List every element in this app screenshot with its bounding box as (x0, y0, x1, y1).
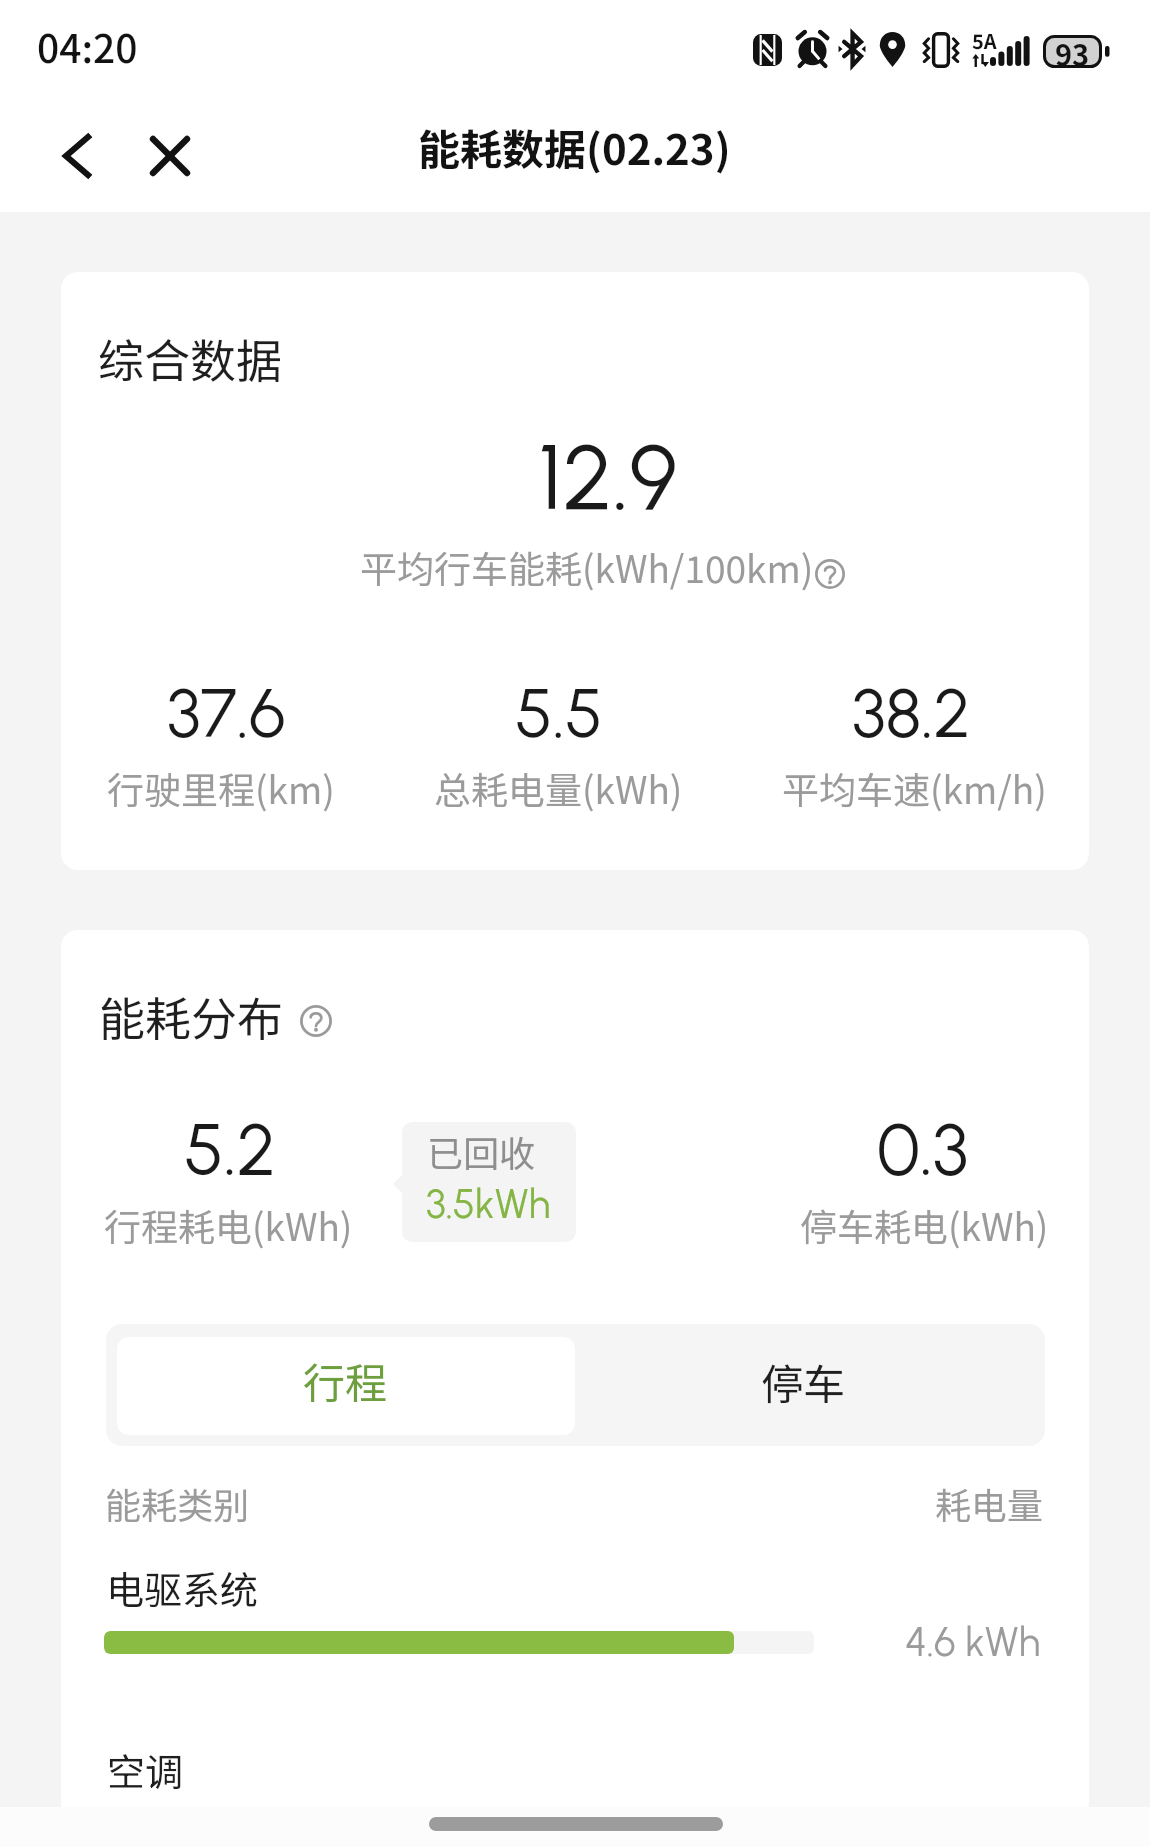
staticText: 3.5kWh (426, 1180, 551, 1228)
staticText: 平均车速(km/h) (782, 761, 1047, 815)
staticText: 已回收 (427, 1125, 536, 1177)
button[interactable]: More information (815, 559, 845, 589)
staticText: 停车耗电(kWh) (800, 1198, 1049, 1252)
button[interactable]: Close (138, 124, 201, 187)
staticText: 平均行车能耗(kWh/100km) (360, 540, 814, 594)
staticText: 37.6 (167, 672, 286, 754)
staticText: 4.6 kWh (905, 1618, 1041, 1666)
button[interactable]: More information (300, 1005, 332, 1037)
staticText: 总耗电量(kWh) (434, 761, 683, 815)
staticText: 能耗分布 (99, 983, 283, 1050)
staticText: 行程 (303, 1350, 388, 1411)
staticText: 04:20 (37, 18, 138, 74)
staticText: 能耗数据(02.23) (418, 116, 731, 177)
staticText: 行程耗电(kWh) (104, 1198, 353, 1252)
button[interactable]: Back (45, 124, 108, 187)
button[interactable]: 行程 (117, 1337, 575, 1435)
staticText: 5.5 (515, 672, 603, 754)
staticText: 12.9 (538, 422, 678, 532)
staticText: 行驶里程(km) (107, 761, 335, 815)
staticText: 耗电量 (935, 1477, 1044, 1529)
staticText: 电驱系统 (106, 1560, 259, 1615)
staticText: 能耗类别 (105, 1477, 250, 1529)
staticText: 5.2 (184, 1106, 277, 1192)
staticText: 综合数据 (98, 325, 282, 392)
staticText: 空调 (107, 1742, 184, 1797)
staticText: 5A (972, 26, 997, 55)
button[interactable]: 停车 (575, 1324, 1045, 1446)
staticText: 0.3 (877, 1106, 969, 1192)
staticText: 93 (1055, 32, 1090, 74)
staticText: 38.2 (852, 672, 971, 754)
staticText: 停车 (761, 1351, 846, 1412)
